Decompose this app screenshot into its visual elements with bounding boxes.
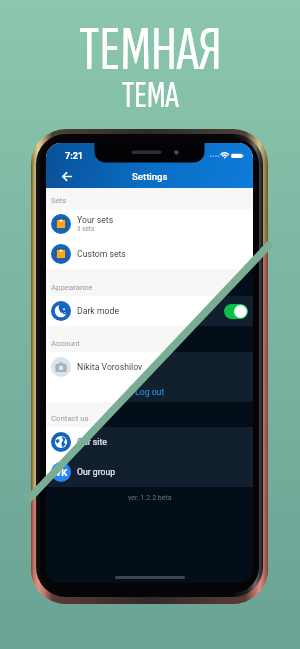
staticText: 3 sets xyxy=(77,225,95,233)
button[interactable]: Dark mode toggle xyxy=(224,304,248,319)
staticText: Your sets xyxy=(77,215,114,225)
button[interactable]: Our site xyxy=(46,427,253,457)
staticText: ТЕМА xyxy=(122,73,179,119)
staticText: Account xyxy=(51,339,80,348)
staticText: 7:21 xyxy=(65,151,84,162)
staticText: Appearance xyxy=(51,283,93,292)
button[interactable]: VK xyxy=(46,457,253,487)
button[interactable]: Your sets xyxy=(46,209,253,239)
staticText: Sets xyxy=(51,196,67,205)
staticText: ver. 1.2.2 beta xyxy=(128,494,172,502)
staticText: Our site xyxy=(77,437,107,447)
staticText: VK xyxy=(55,467,68,478)
button[interactable]: Back xyxy=(56,165,78,187)
button[interactable]: Log out xyxy=(46,382,253,402)
staticText: ТЕМНАЯ xyxy=(79,12,222,88)
staticText: Nikita Voroshilov xyxy=(77,362,143,372)
staticText: Contact us xyxy=(51,414,89,423)
staticText: VK xyxy=(55,467,68,478)
staticText: Our site xyxy=(77,437,107,447)
button[interactable]: Custom sets xyxy=(46,239,253,269)
button[interactable]: Your sets xyxy=(46,209,253,239)
staticText: Nikita Voroshilov xyxy=(77,362,143,372)
staticText: 7:21 xyxy=(65,151,84,162)
button[interactable]: Dark mode xyxy=(46,296,253,326)
staticText: Settings xyxy=(132,171,168,182)
staticText: ver. 1.2.2 beta xyxy=(128,494,172,502)
button[interactable]: Back xyxy=(56,165,78,187)
staticText: Contact us xyxy=(51,414,89,423)
button[interactable]: Dark mode xyxy=(46,296,253,326)
staticText: Account xyxy=(51,339,80,348)
staticText: Appearance xyxy=(51,283,93,292)
button[interactable]: Custom sets xyxy=(46,239,253,269)
button[interactable]: Nikita Voroshilov xyxy=(46,352,253,382)
staticText: Log out xyxy=(135,387,165,397)
staticText: Our group xyxy=(77,467,116,477)
staticText: Custom sets xyxy=(77,249,126,259)
staticText: Sets xyxy=(51,196,67,205)
button[interactable]: Dark mode toggle xyxy=(224,304,248,319)
staticText: Your sets xyxy=(77,215,114,225)
staticText: Dark mode xyxy=(77,306,120,316)
staticText: Log out xyxy=(135,387,165,397)
button[interactable]: Nikita Voroshilov xyxy=(46,352,253,382)
staticText: 3 sets xyxy=(77,225,95,233)
staticText: Custom sets xyxy=(77,249,126,259)
button[interactable]: VK xyxy=(46,457,253,487)
staticText: Settings xyxy=(132,171,168,182)
staticText: Our group xyxy=(77,467,116,477)
button[interactable]: Our site xyxy=(46,427,253,457)
staticText: Dark mode xyxy=(77,306,120,316)
button[interactable]: Log out xyxy=(46,382,253,402)
